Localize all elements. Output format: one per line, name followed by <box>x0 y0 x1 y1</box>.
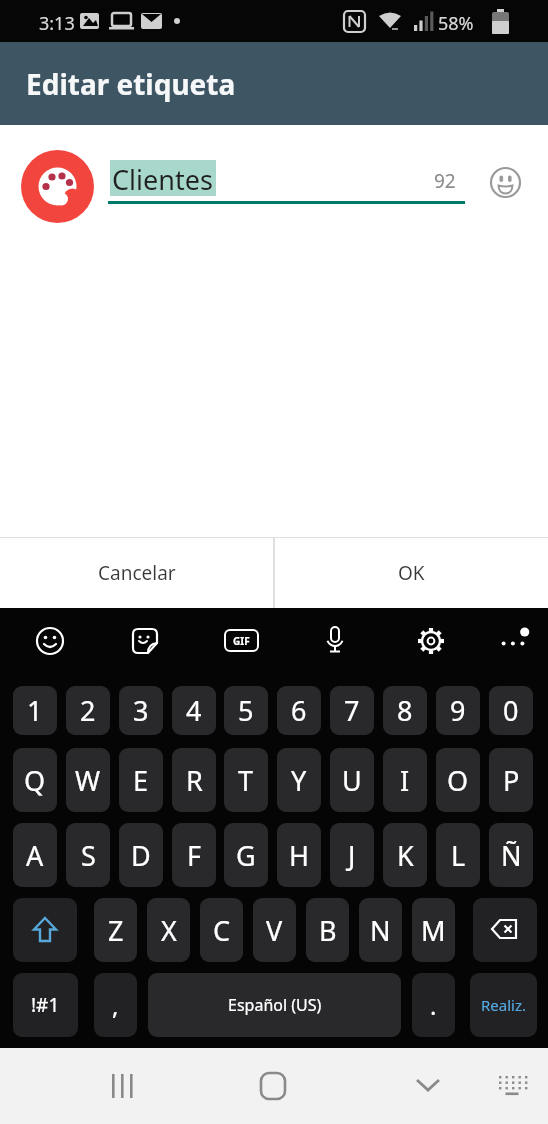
button[interactable]: B <box>306 898 349 962</box>
button[interactable]: N <box>359 898 402 962</box>
button[interactable] <box>497 1076 529 1108</box>
button[interactable]: U <box>330 748 374 812</box>
button[interactable]: Ñ <box>489 823 533 887</box>
staticText: 58% <box>438 11 474 36</box>
staticText: 7 <box>344 692 360 729</box>
button[interactable]: D <box>119 823 163 887</box>
staticText: 4 <box>186 692 202 729</box>
staticText: Clientes <box>112 161 213 198</box>
staticText: K <box>397 837 414 874</box>
button[interactable]: 8 <box>383 686 427 735</box>
button[interactable]: M <box>412 898 455 962</box>
button[interactable] <box>498 624 530 656</box>
staticText: P <box>503 762 520 799</box>
button[interactable]: 2 <box>66 686 110 735</box>
staticText: 2 <box>80 692 96 729</box>
staticText: , <box>112 989 119 1022</box>
staticText: 8 <box>397 692 413 729</box>
staticText: 3 <box>133 692 149 729</box>
staticText: 92 <box>434 168 456 194</box>
button[interactable] <box>489 166 522 199</box>
button[interactable]: Cancelar <box>0 538 273 608</box>
staticText: S <box>81 837 96 874</box>
staticText: W <box>75 762 101 799</box>
staticText: T <box>238 762 254 799</box>
staticText: B <box>319 912 337 949</box>
staticText: O <box>447 762 469 799</box>
button[interactable]: 1 <box>13 686 57 735</box>
staticText: 3:13 <box>39 11 75 36</box>
button[interactable]: , <box>94 973 137 1037</box>
button[interactable]: F <box>172 823 216 887</box>
staticText: 0 <box>503 692 519 729</box>
button[interactable]: G <box>224 823 268 887</box>
staticText: Editar etiqueta <box>26 65 236 103</box>
staticText: 5 <box>238 692 254 729</box>
button[interactable]: 5 <box>224 686 268 735</box>
button[interactable]: S <box>66 823 110 887</box>
button[interactable]: O <box>436 748 480 812</box>
button[interactable]: 3 <box>119 686 163 735</box>
button[interactable]: Q <box>13 748 57 812</box>
staticText: U <box>342 762 362 799</box>
button[interactable]: L <box>436 823 480 887</box>
button[interactable]: Y <box>277 748 321 812</box>
button[interactable]: Realiz. <box>470 973 537 1037</box>
staticText: C <box>213 912 231 949</box>
button[interactable]: 9 <box>436 686 480 735</box>
staticText: E <box>133 762 149 799</box>
staticText: GIF <box>233 634 250 648</box>
staticText: . <box>430 989 437 1022</box>
button[interactable] <box>108 1072 140 1104</box>
staticText: 6 <box>291 692 307 729</box>
button[interactable]: A <box>13 823 57 887</box>
button[interactable]: V <box>253 898 296 962</box>
staticText: H <box>289 837 310 874</box>
staticText: X <box>161 912 177 949</box>
button[interactable]: R <box>172 748 216 812</box>
button[interactable]: 6 <box>277 686 321 735</box>
button[interactable]: 0 <box>489 686 533 735</box>
button[interactable]: J <box>330 823 374 887</box>
staticText: Español (US) <box>228 994 322 1016</box>
button[interactable]: T <box>224 748 268 812</box>
button[interactable]: I <box>383 748 427 812</box>
button[interactable] <box>473 898 537 962</box>
button[interactable]: W <box>66 748 110 812</box>
staticText: Q <box>24 762 46 799</box>
staticText: OK <box>398 560 425 586</box>
staticText: Cancelar <box>98 560 176 586</box>
button[interactable]: E <box>119 748 163 812</box>
staticText: L <box>451 837 466 874</box>
button[interactable]: OK <box>275 538 548 608</box>
button[interactable] <box>21 150 94 223</box>
button[interactable]: GIF <box>225 630 258 652</box>
button[interactable] <box>130 626 160 656</box>
button[interactable]: Z <box>94 898 137 962</box>
staticText: A <box>26 837 44 874</box>
button[interactable]: X <box>147 898 190 962</box>
staticText: Y <box>291 762 307 799</box>
button[interactable] <box>412 1074 444 1106</box>
button[interactable] <box>416 626 446 656</box>
button[interactable] <box>13 898 77 962</box>
button[interactable] <box>35 626 65 656</box>
button[interactable]: 4 <box>172 686 216 735</box>
staticText: R <box>186 762 203 799</box>
button[interactable]: 7 <box>330 686 374 735</box>
button[interactable]: P <box>489 748 533 812</box>
button[interactable]: K <box>383 823 427 887</box>
staticText: !#1 <box>31 992 60 1018</box>
staticText: F <box>187 837 202 874</box>
button[interactable]: . <box>412 973 455 1037</box>
staticText: V <box>266 912 283 949</box>
button[interactable]: Español (US) <box>148 973 401 1037</box>
button[interactable]: H <box>277 823 321 887</box>
staticText: 9 <box>450 692 466 729</box>
button[interactable]: !#1 <box>13 973 78 1037</box>
staticText: Realiz. <box>481 995 527 1015</box>
button[interactable]: C <box>200 898 243 962</box>
button[interactable] <box>258 1072 290 1104</box>
staticText: D <box>131 837 151 874</box>
button[interactable] <box>320 625 350 655</box>
